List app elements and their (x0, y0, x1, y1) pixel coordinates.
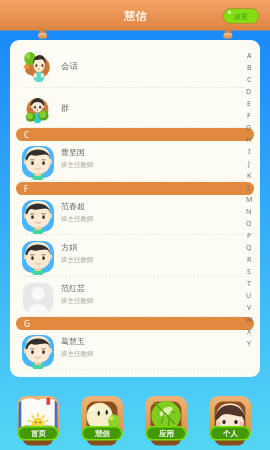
staticText: I (248, 147, 251, 157)
staticText: 方娟 (61, 242, 77, 252)
button[interactable]: 葛慧玉 (10, 329, 260, 370)
button[interactable]: F (10, 182, 260, 195)
staticText: A (247, 51, 252, 61)
button[interactable]: 应用 (134, 390, 198, 450)
staticText: 曹坚国 (61, 147, 85, 157)
staticText: C (24, 129, 30, 140)
staticText: Y (247, 339, 251, 349)
staticText: F (247, 111, 251, 121)
button[interactable]: 首页 (6, 390, 70, 450)
staticText: 慧信 (124, 9, 147, 23)
staticText: U (246, 291, 252, 301)
button[interactable]: G (10, 317, 260, 330)
staticText: J (248, 159, 250, 169)
staticText: C (247, 75, 252, 85)
staticText: F (24, 183, 29, 194)
staticText: Q (246, 243, 252, 253)
staticText: R (247, 255, 252, 265)
staticText: D (246, 87, 252, 97)
button[interactable]: 范红芸 (10, 277, 260, 317)
staticText: B (247, 63, 252, 73)
staticText: M (246, 195, 253, 205)
staticText: K (247, 171, 252, 181)
staticText: T (247, 279, 251, 289)
staticText: E (247, 99, 251, 109)
staticText: O (246, 219, 252, 229)
button[interactable]: 方娟 (10, 235, 260, 277)
staticText: 设置 (234, 12, 248, 21)
staticText: 群 (61, 103, 70, 114)
staticText: S (247, 267, 251, 277)
staticText: 班主任教师 (61, 161, 94, 169)
staticText: V (247, 303, 252, 313)
staticText: N (246, 207, 252, 217)
button[interactable]: 范春超 (10, 194, 260, 235)
staticText: 应用 (159, 429, 174, 438)
staticText: 首页 (31, 429, 46, 438)
button[interactable]: 曹坚国 (10, 140, 260, 181)
staticText: 范春超 (61, 201, 85, 211)
button[interactable]: 慧信 (70, 390, 134, 450)
staticText: G (24, 318, 30, 329)
staticText: 葛慧玉 (61, 336, 85, 346)
staticText: G (246, 123, 252, 133)
button[interactable]: 会话 (10, 44, 260, 88)
staticText: 个人 (223, 429, 238, 438)
staticText: 慧信 (95, 429, 110, 438)
button[interactable]: C (10, 128, 260, 141)
staticText: 范红芸 (61, 283, 85, 293)
staticText: 班主任教师 (61, 256, 94, 264)
staticText: W (246, 315, 253, 325)
staticText: 班主任教师 (61, 350, 94, 358)
staticText: 班主任教师 (61, 297, 94, 305)
staticText: H (246, 135, 252, 145)
staticText: P (247, 231, 252, 241)
button[interactable]: 群 (10, 88, 260, 128)
staticText: 班主任教师 (61, 215, 94, 223)
staticText: X (247, 327, 252, 337)
button[interactable]: 设置 (223, 8, 259, 24)
staticText: L (247, 183, 251, 193)
staticText: 会话 (61, 61, 78, 72)
button[interactable]: Alphabet index (238, 50, 260, 350)
button[interactable]: 个人 (198, 390, 262, 450)
